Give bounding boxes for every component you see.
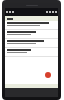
- button[interactable]: [5, 21, 58, 29]
- button[interactable]: [5, 48, 58, 56]
- button[interactable]: [5, 30, 58, 38]
- button[interactable]: [5, 39, 58, 47]
- button[interactable]: Compose: [45, 72, 51, 78]
